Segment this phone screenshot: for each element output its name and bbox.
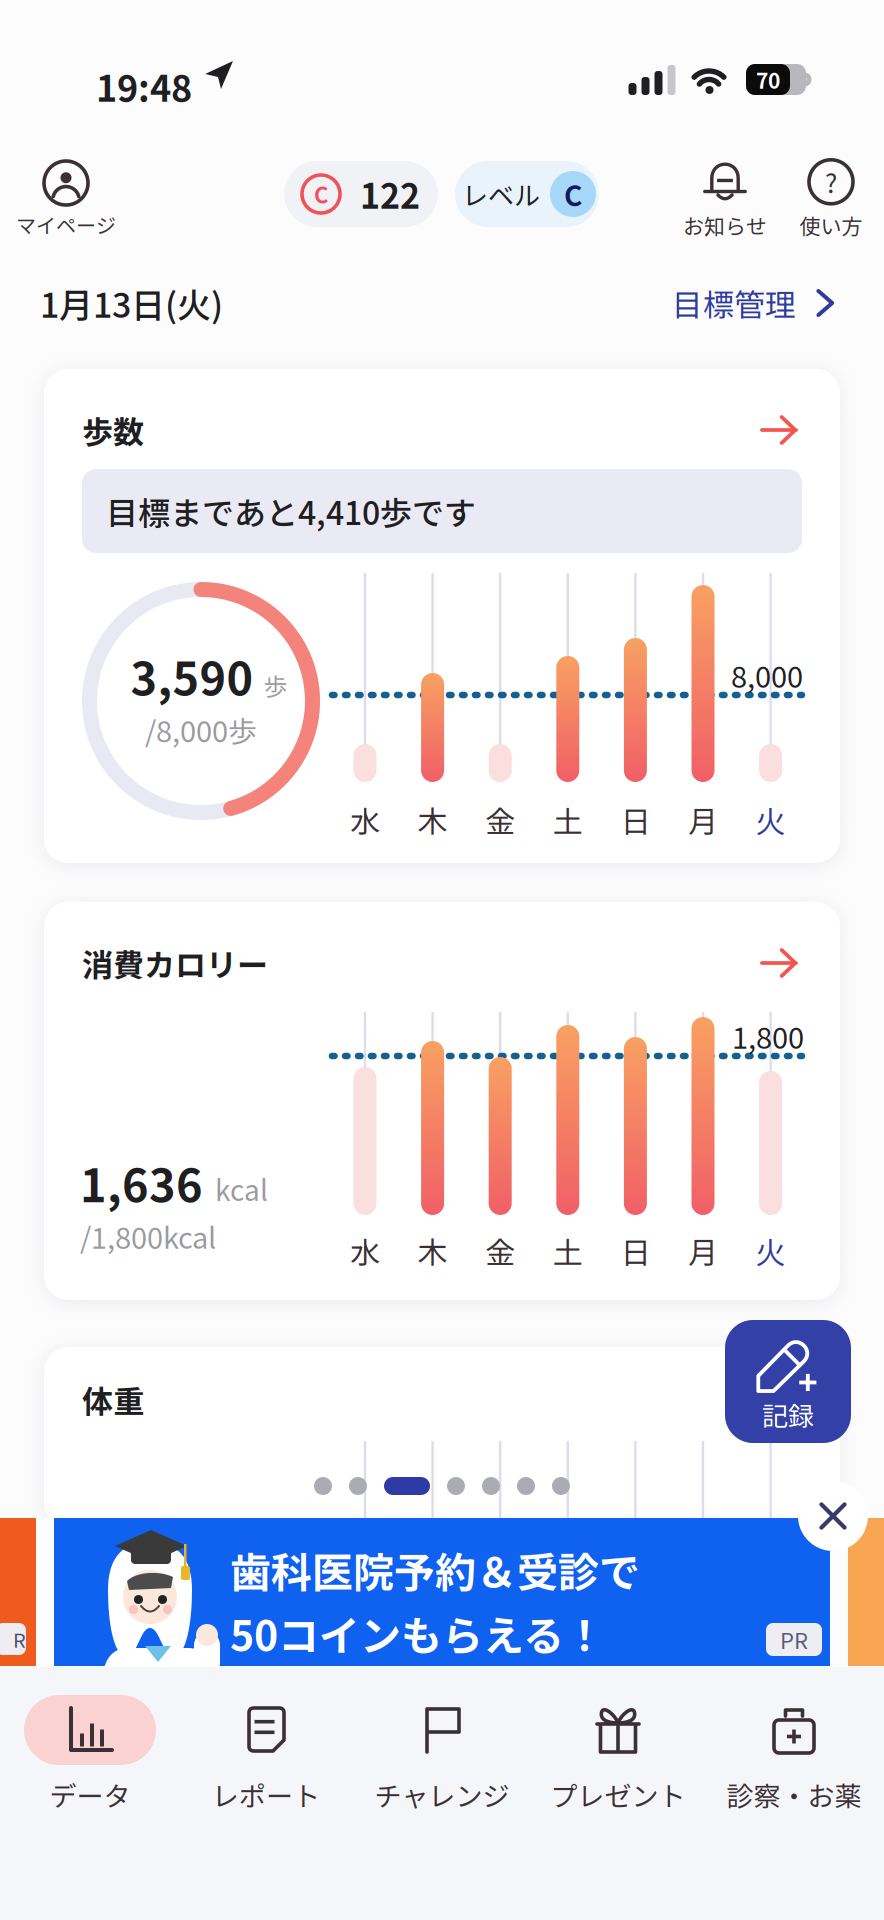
staticText: C xyxy=(564,174,582,214)
staticText: 50コインもらえる！ xyxy=(230,1603,605,1663)
staticText: 歩 xyxy=(263,668,287,703)
staticText: 消費カロリー xyxy=(82,941,268,985)
staticText: 目標まであと4,410歩です xyxy=(106,488,476,534)
staticText: 1,800 xyxy=(732,1015,804,1057)
staticText: 診察・お薬 xyxy=(726,1775,861,1814)
staticText: 火 xyxy=(756,1229,786,1272)
staticText: 日 xyxy=(620,798,650,841)
button[interactable]: プレゼント xyxy=(530,1695,706,1814)
staticText: R xyxy=(13,1624,26,1653)
staticText: /8,000歩 xyxy=(145,709,257,751)
button[interactable]: 歩数の詳細へ xyxy=(756,407,802,453)
staticText: PR xyxy=(780,1624,808,1655)
staticText: 日 xyxy=(620,1229,650,1272)
staticText: 1月13日(火) xyxy=(40,278,223,328)
staticText: 歯科医院予約＆受診で xyxy=(230,1540,640,1599)
staticText: 金 xyxy=(485,1229,515,1272)
staticText: 19:48 xyxy=(96,60,192,112)
staticText: マイページ xyxy=(16,210,116,239)
staticText: 水 xyxy=(350,798,380,841)
staticText: 月 xyxy=(688,798,718,841)
button[interactable]: ? xyxy=(783,157,879,243)
button[interactable]: お知らせ xyxy=(675,157,775,243)
button[interactable]: データ xyxy=(2,1695,178,1814)
staticText: 水 xyxy=(350,1229,380,1272)
button[interactable]: C xyxy=(284,161,438,227)
button[interactable]: 記録する xyxy=(725,1320,851,1443)
staticText: お知らせ xyxy=(683,210,767,240)
staticText: ? xyxy=(825,163,837,201)
button[interactable]: 目標管理 xyxy=(672,281,840,325)
staticText: /1,800kcal xyxy=(80,1215,216,1257)
staticText: プレゼント xyxy=(550,1775,685,1814)
staticText: 122 xyxy=(360,169,420,219)
staticText: 歩数 xyxy=(82,408,144,452)
staticText: レベル xyxy=(462,175,540,213)
staticText: 使い方 xyxy=(799,210,862,240)
staticText: 1,636 xyxy=(80,1150,203,1215)
staticText: 木 xyxy=(418,798,448,841)
staticText: レポート xyxy=(212,1775,320,1814)
staticText: データ xyxy=(49,1775,130,1814)
button[interactable]: 消費カロリーの詳細へ xyxy=(756,940,802,986)
staticText: 土 xyxy=(553,1229,583,1272)
button[interactable]: 診察・お薬 xyxy=(706,1695,882,1814)
staticText: 3,590 xyxy=(130,643,253,709)
staticText: チャレンジ xyxy=(374,1775,509,1814)
staticText: 70 xyxy=(756,64,780,95)
staticText: 8,000 xyxy=(731,654,803,696)
button[interactable]: 広告を閉じる xyxy=(798,1481,868,1551)
staticText: 記録 xyxy=(762,1396,814,1433)
staticText: 目標管理 xyxy=(672,281,796,325)
staticText: kcal xyxy=(215,1169,268,1209)
button[interactable]: レベル xyxy=(455,161,599,227)
staticText: 金 xyxy=(485,798,515,841)
button[interactable]: チャレンジ xyxy=(354,1695,530,1814)
staticText: C xyxy=(314,178,328,210)
staticText: 月 xyxy=(688,1229,718,1272)
staticText: 木 xyxy=(418,1229,448,1272)
button[interactable]: レポート xyxy=(178,1695,354,1814)
button[interactable]: マイページ xyxy=(6,157,126,243)
staticText: 土 xyxy=(553,798,583,841)
staticText: 火 xyxy=(756,798,786,841)
staticText: 体重 xyxy=(82,1377,144,1422)
